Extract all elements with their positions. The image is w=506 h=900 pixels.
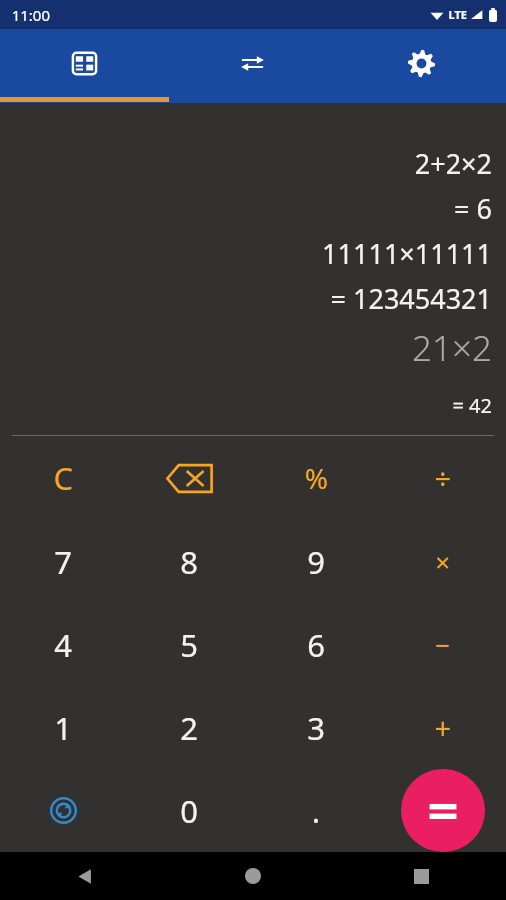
button[interactable]: × xyxy=(379,520,506,603)
staticText: 5 xyxy=(180,624,198,666)
button[interactable]: 6 xyxy=(252,603,379,686)
staticText: 3 xyxy=(307,707,325,749)
button[interactable]: ÷ xyxy=(379,436,506,520)
staticText: = 123454321 xyxy=(330,280,492,317)
staticText: × xyxy=(435,544,450,579)
staticText: 1 xyxy=(54,707,72,749)
staticText: % xyxy=(304,459,328,497)
button[interactable]: Back xyxy=(0,852,168,900)
button[interactable]: . xyxy=(252,769,379,852)
staticText: 0 xyxy=(180,790,198,832)
staticText: 4 xyxy=(54,624,72,666)
button[interactable]: 8 xyxy=(126,520,252,603)
button[interactable]: Settings xyxy=(337,29,506,97)
staticText: 21×2 xyxy=(412,324,492,372)
button[interactable]: 9 xyxy=(252,520,379,603)
button[interactable]: 4 xyxy=(0,603,126,686)
button[interactable]: 5 xyxy=(126,603,252,686)
button[interactable]: Backspace xyxy=(126,436,252,520)
button[interactable]: Equals xyxy=(401,769,485,852)
button[interactable]: % xyxy=(252,436,379,520)
button[interactable]: Home xyxy=(168,852,337,900)
button[interactable]: 7 xyxy=(0,520,126,603)
staticText: LTE xyxy=(448,7,467,22)
staticText: 8 xyxy=(180,541,198,583)
button[interactable]: Convert xyxy=(168,29,337,97)
button[interactable]: 1 xyxy=(0,686,126,769)
staticText: − xyxy=(435,627,450,662)
button[interactable]: 3 xyxy=(252,686,379,769)
button[interactable]: 2 xyxy=(126,686,252,769)
button[interactable]: − xyxy=(379,603,506,686)
staticText: 9 xyxy=(307,541,325,583)
staticText: ÷ xyxy=(434,459,451,498)
staticText: = 42 xyxy=(452,392,492,419)
button[interactable]: 0 xyxy=(126,769,252,852)
button[interactable]: + xyxy=(379,686,506,769)
staticText: . xyxy=(311,790,320,832)
staticText: = 6 xyxy=(454,190,492,227)
staticText: 11111×11111 xyxy=(322,235,492,272)
staticText: 11:00 xyxy=(11,5,50,25)
button[interactable]: Recents xyxy=(337,852,506,900)
button[interactable]: C xyxy=(0,436,126,520)
staticText: C xyxy=(53,457,73,499)
staticText: 6 xyxy=(307,624,325,666)
staticText: 7 xyxy=(54,541,72,583)
button[interactable]: History xyxy=(0,769,126,852)
button[interactable]: Calculator xyxy=(0,29,168,97)
staticText: 2+2×2 xyxy=(414,145,492,182)
staticText: 2 xyxy=(180,707,198,749)
staticText: + xyxy=(434,708,451,747)
